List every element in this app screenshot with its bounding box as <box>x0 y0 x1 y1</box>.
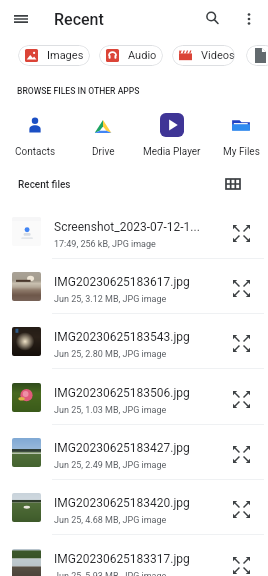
staticText: Videos <box>201 49 235 62</box>
button[interactable]: Open in full screen <box>227 385 255 413</box>
button[interactable]: Open in full screen <box>227 329 255 357</box>
button[interactable]: Drive <box>70 112 136 158</box>
button[interactable]: IMG20230625183617.jpg <box>0 259 268 314</box>
button[interactable]: IMG20230625183543.jpg <box>0 314 268 369</box>
button[interactable]: Open in full screen <box>227 551 255 576</box>
staticText: IMG20230625183617.jpg <box>54 275 224 289</box>
staticText: Recent <box>54 10 104 29</box>
staticText: Jun 25, 2.80 MB, JPG image <box>54 349 167 360</box>
button[interactable]: Switch to grid view <box>220 171 246 197</box>
button[interactable]: IMG20230625183427.jpg <box>0 425 268 480</box>
staticText: 17:49, 256 kB, JPG image <box>54 239 156 250</box>
staticText: Drive <box>92 146 115 158</box>
button[interactable]: IMG20230625183317.jpg <box>0 536 268 576</box>
staticText: Jun 25, 1.03 MB, JPG image <box>54 405 167 416</box>
staticText: Screenshot_2023-07-12-1... <box>54 220 224 234</box>
button[interactable] <box>246 45 268 66</box>
button[interactable]: Contacts <box>2 112 68 158</box>
staticText: Images <box>47 49 84 62</box>
staticText: IMG20230625183543.jpg <box>54 330 224 344</box>
button[interactable]: Audio <box>99 45 163 66</box>
button[interactable]: Images <box>18 45 90 66</box>
staticText: IMG20230625183420.jpg <box>54 496 224 510</box>
staticText: Jun 25, 2.49 MB, JPG image <box>54 460 167 471</box>
button[interactable]: Search <box>198 4 227 33</box>
staticText: IMG20230625183427.jpg <box>54 441 224 455</box>
button[interactable]: Open in full screen <box>227 440 255 468</box>
button[interactable]: Open in full screen <box>227 495 255 523</box>
staticText: Audio <box>128 49 157 62</box>
button[interactable]: Screenshot_2023-07-12-1... <box>0 204 268 259</box>
staticText: Jun 25, 4.68 MB, JPG image <box>54 515 167 526</box>
staticText: Jun 25, 3.12 MB, JPG image <box>54 294 167 305</box>
staticText: IMG20230625183506.jpg <box>54 386 224 400</box>
staticText: Contacts <box>15 146 56 158</box>
staticText: BROWSE FILES IN OTHER APPS <box>17 86 140 96</box>
button[interactable]: IMG20230625183506.jpg <box>0 370 268 425</box>
button[interactable]: My Files <box>208 112 268 158</box>
staticText: Recent files <box>18 179 71 191</box>
staticText: IMG20230625183317.jpg <box>54 552 224 566</box>
button[interactable]: Open in full screen <box>227 274 255 302</box>
staticText: Jun 25, 5.93 MB, JPG image <box>54 571 167 576</box>
staticText: Media Player <box>143 146 201 158</box>
button[interactable]: Open navigation drawer <box>6 4 36 34</box>
button[interactable]: Videos <box>172 45 235 66</box>
staticText: My Files <box>223 146 260 158</box>
button[interactable]: IMG20230625183420.jpg <box>0 480 268 535</box>
button[interactable]: Media Player <box>139 112 205 158</box>
button[interactable]: More options <box>234 4 263 33</box>
button[interactable]: Open in full screen <box>227 219 255 247</box>
